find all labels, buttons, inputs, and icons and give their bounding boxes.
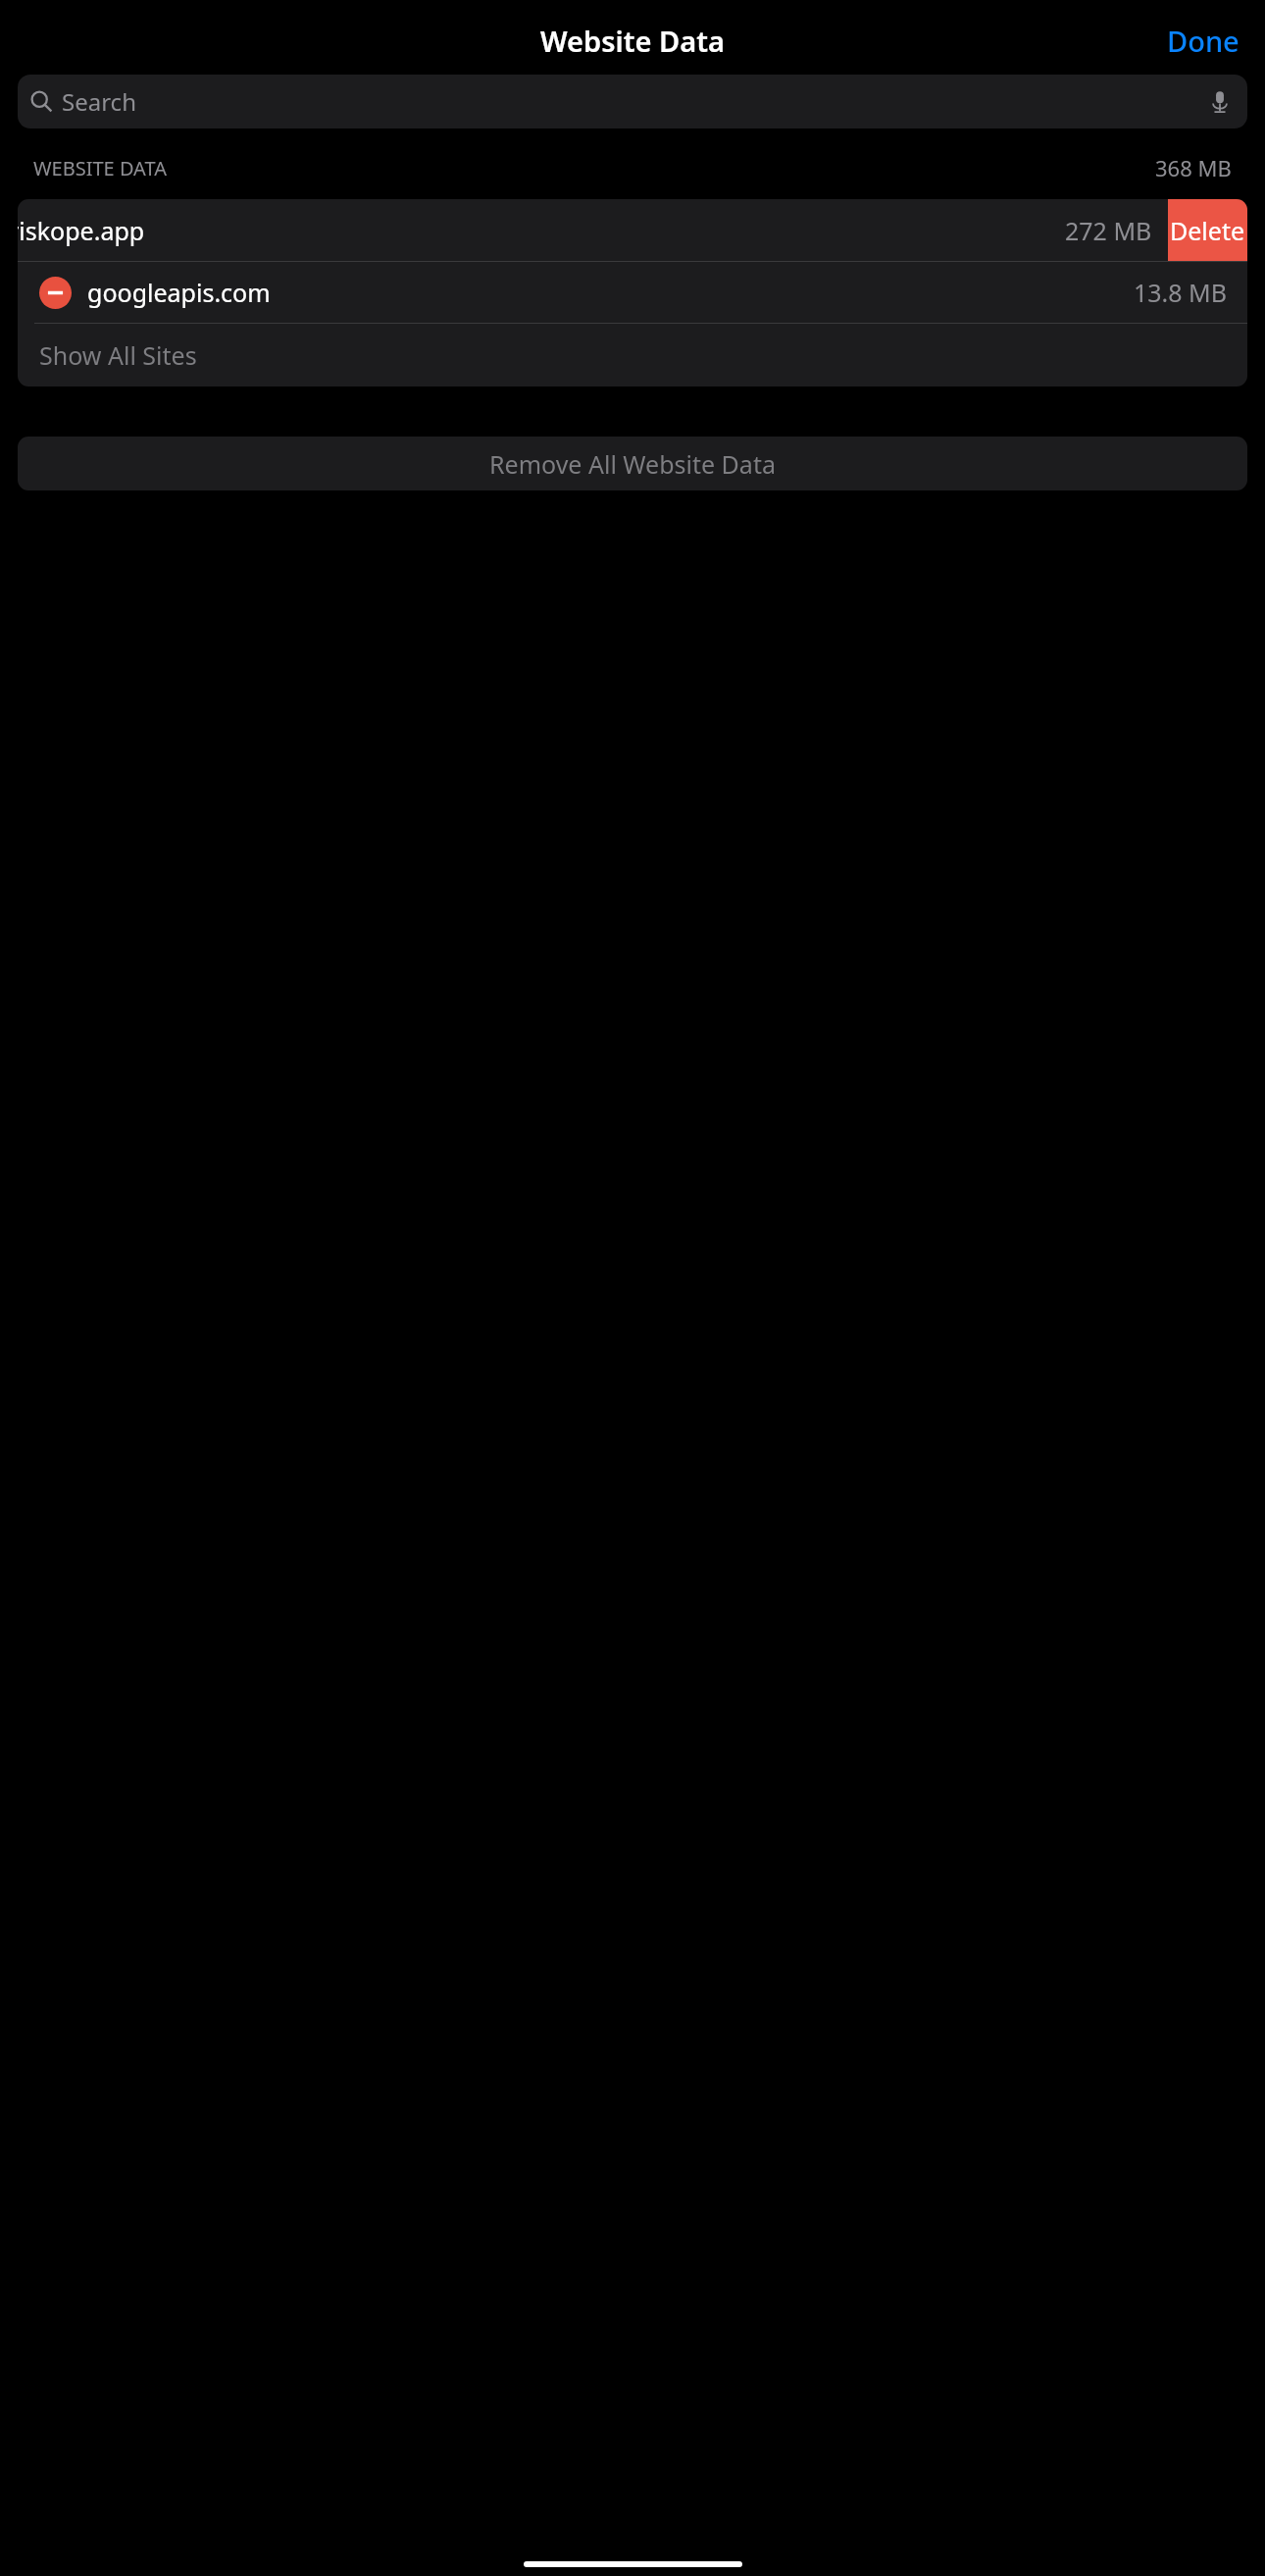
staticText: 13.8 MB — [1134, 276, 1228, 309]
button[interactable]: Delete — [1168, 199, 1247, 261]
button[interactable]: Remove googleapis.com — [18, 262, 1247, 323]
staticText: Website Data — [540, 22, 725, 60]
button[interactable]: Remove All Website Data — [18, 437, 1247, 490]
staticText: WEBSITE DATA — [33, 155, 167, 181]
button[interactable]: Show All Sites — [18, 324, 1247, 386]
button[interactable]: Search — [18, 75, 1247, 129]
staticText: 368 MB — [1155, 153, 1232, 182]
button[interactable]: Voice search — [1205, 87, 1235, 117]
staticText: riskope.app — [18, 214, 145, 247]
staticText: googleapis.com — [87, 276, 271, 309]
button[interactable]: Done — [1157, 16, 1249, 66]
staticText: Delete — [1170, 214, 1245, 247]
staticText: 272 MB — [1065, 214, 1152, 247]
staticText: Search — [62, 85, 136, 118]
staticText: Done — [1167, 22, 1240, 60]
button[interactable]: Remove googleapis.com — [39, 277, 72, 309]
staticText: Show All Sites — [39, 338, 197, 372]
button[interactable]: riskope.app — [18, 199, 1168, 261]
staticText: Remove All Website Data — [489, 447, 776, 481]
